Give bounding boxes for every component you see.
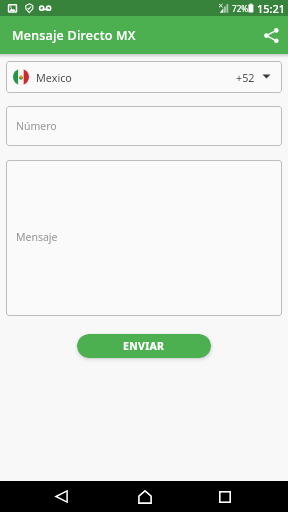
button[interactable]: Back <box>46 481 77 512</box>
staticText: Mexico <box>36 70 72 85</box>
button[interactable]: Número <box>6 106 282 146</box>
staticText: ENVIAR <box>123 339 165 353</box>
button[interactable]: Recents <box>209 481 240 512</box>
button[interactable]: Mensaje <box>6 160 282 316</box>
staticText: Mensaje Directo MX <box>12 27 136 44</box>
staticText: Mensaje <box>16 230 58 244</box>
staticText: +52 <box>236 70 255 85</box>
button[interactable]: Home <box>129 481 160 512</box>
staticText: Número <box>16 119 57 133</box>
button[interactable]: Mexico <box>6 61 282 93</box>
staticText: 15:21 <box>257 1 286 16</box>
button[interactable]: ENVIAR <box>77 334 211 358</box>
staticText: 72% <box>232 3 249 14</box>
button[interactable]: Share <box>257 21 285 49</box>
